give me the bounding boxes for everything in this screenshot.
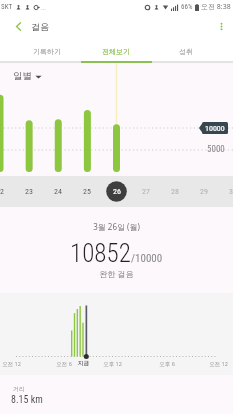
button[interactable]: 일별: [13, 70, 42, 82]
staticText: 10000: [205, 124, 225, 133]
staticText: 26: [113, 187, 121, 196]
button[interactable]: 25: [73, 176, 101, 207]
staticText: 30: [229, 187, 233, 196]
staticText: 25: [83, 187, 91, 196]
staticText: SKT: [1, 3, 13, 11]
staticText: 23: [25, 187, 33, 196]
staticText: 3월 26일 (월): [0, 221, 233, 232]
button[interactable]: 기록하기: [12, 41, 81, 61]
staticText: 66%: [181, 3, 193, 11]
staticText: 지금: [78, 360, 89, 367]
button[interactable]: 24: [44, 176, 72, 207]
staticText: 27: [142, 187, 150, 196]
staticText: 성취: [179, 47, 193, 56]
staticText: 오전 6: [56, 360, 72, 368]
button[interactable]: 전체보기: [81, 41, 151, 61]
staticText: 10852: [70, 239, 131, 268]
staticText: 오전 12: [2, 360, 21, 368]
staticText: 오전 8:38: [201, 2, 231, 12]
staticText: 오전 12: [209, 360, 228, 368]
staticText: /10000: [131, 252, 163, 265]
button[interactable]: 23: [15, 176, 43, 207]
staticText: 완한 걸음: [0, 268, 233, 279]
button[interactable]: 29: [190, 176, 218, 207]
staticText: 5000: [207, 144, 225, 155]
staticText: 거리: [13, 385, 25, 393]
staticText: ...: [41, 4, 46, 11]
button[interactable]: 28: [161, 176, 189, 207]
staticText: 일별: [13, 70, 32, 82]
staticText: 28: [171, 187, 179, 196]
staticText: 24: [54, 187, 62, 196]
staticText: 오후 12: [103, 360, 122, 368]
staticText: 오후 6: [159, 360, 175, 368]
button[interactable]: Back: [6, 14, 30, 38]
staticText: 기록하기: [33, 47, 61, 56]
staticText: 8.15 km: [11, 394, 43, 406]
button[interactable]: More options: [209, 14, 233, 38]
button[interactable]: 성취: [151, 41, 221, 61]
button[interactable]: 거리: [0, 375, 233, 414]
button[interactable]: 26: [103, 176, 131, 207]
button[interactable]: 27: [132, 176, 160, 207]
staticText: 22: [0, 187, 4, 196]
button[interactable]: 22: [0, 176, 14, 207]
button[interactable]: 30: [219, 176, 233, 207]
staticText: 전체보기: [102, 47, 130, 56]
staticText: 걸음: [31, 21, 49, 32]
staticText: 29: [200, 187, 208, 196]
